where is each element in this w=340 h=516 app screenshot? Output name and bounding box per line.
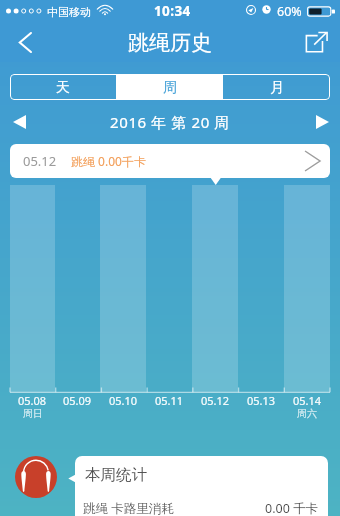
button[interactable]: Back xyxy=(3,22,47,62)
button[interactable] xyxy=(146,185,192,392)
staticText: 05.12 xyxy=(23,152,57,170)
staticText: 05.08 xyxy=(18,393,47,408)
button[interactable]: Next week xyxy=(306,108,338,135)
staticText: 本周统计 xyxy=(85,465,147,485)
button[interactable]: 天 xyxy=(10,74,116,100)
staticText: 05.13 xyxy=(247,393,276,408)
staticText: 跳绳历史 xyxy=(128,30,212,56)
staticText: 60% xyxy=(277,3,302,20)
staticText: 10:34 xyxy=(154,2,191,20)
staticText: 周日 xyxy=(23,407,43,420)
staticText: 05.12 xyxy=(201,393,230,408)
button[interactable]: Previous week xyxy=(3,108,35,135)
staticText: 周六 xyxy=(297,407,317,420)
button[interactable]: 月 xyxy=(223,74,330,100)
button[interactable] xyxy=(55,185,100,392)
staticText: 天 xyxy=(56,79,70,97)
staticText: 跳绳 0.00千卡 xyxy=(71,153,146,169)
button[interactable]: Share xyxy=(294,22,338,62)
staticText: 2016 年 第 20 周 xyxy=(110,112,230,132)
staticText: 中国移动 xyxy=(47,5,91,19)
staticText: 0.00 千卡 xyxy=(265,500,319,516)
staticText: 跳绳 卡路里消耗 xyxy=(83,500,174,516)
staticText: 05.11 xyxy=(155,393,184,408)
button[interactable]: 周 xyxy=(116,74,223,100)
staticText: 05.10 xyxy=(109,393,138,408)
staticText: 05.09 xyxy=(63,393,92,408)
button[interactable]: Jump rope xyxy=(15,456,57,498)
button[interactable] xyxy=(238,185,284,392)
staticText: 周 xyxy=(163,79,177,97)
button[interactable]: 本周统计 xyxy=(75,456,328,516)
staticText: 月 xyxy=(270,79,284,97)
staticText: 05.14 xyxy=(293,393,322,408)
button[interactable]: 05.12 xyxy=(10,144,330,178)
